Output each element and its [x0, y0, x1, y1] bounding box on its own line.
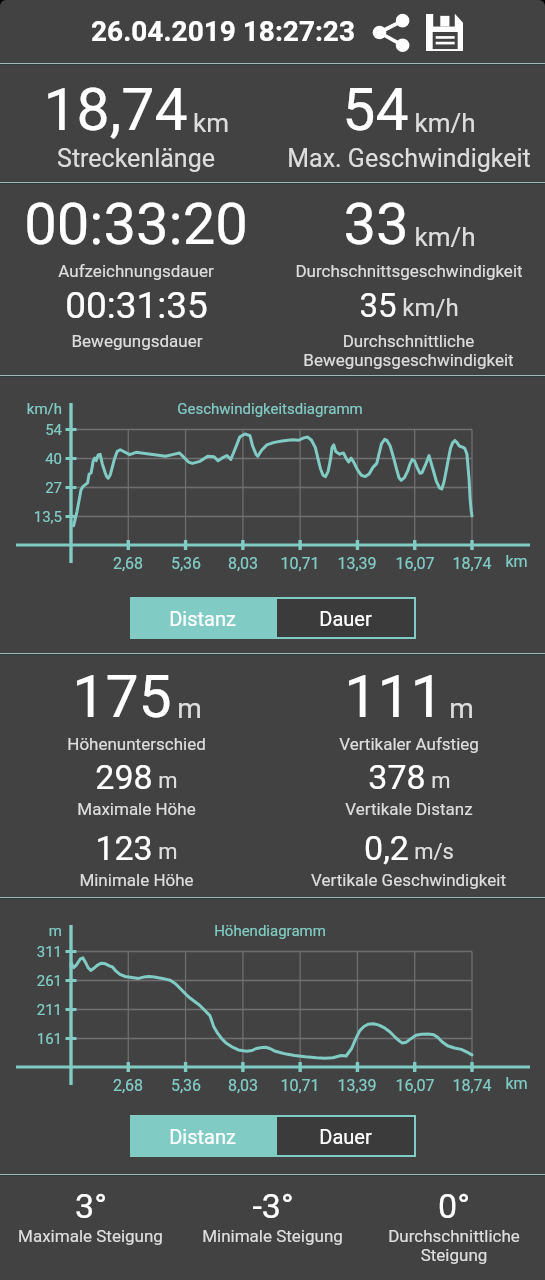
staticText: 5,36	[156, 554, 216, 573]
staticText: 8,03	[213, 554, 273, 573]
staticText: Vertikale Geschwindigkeit	[311, 870, 506, 890]
staticText: 261	[0, 972, 62, 990]
staticText: Distanz	[169, 1125, 236, 1148]
staticText: 13,5	[0, 508, 62, 526]
staticText: km	[193, 108, 229, 138]
button[interactable]: Distanz	[130, 1115, 275, 1157]
staticText: 123	[95, 828, 153, 868]
staticText: m	[158, 839, 178, 865]
staticText: m/s	[414, 839, 454, 865]
staticText: Minimale Steigung	[202, 1226, 343, 1246]
button[interactable]: Dauer	[275, 597, 416, 639]
staticText: 18,74	[442, 1076, 502, 1095]
staticText: Maximale Höhe	[77, 799, 196, 819]
staticText: m	[0, 922, 62, 940]
staticText: 211	[0, 1001, 62, 1019]
staticText: km	[505, 552, 528, 571]
staticText: Höhenunterschied	[67, 734, 206, 754]
staticText: Dauer	[319, 1125, 372, 1148]
staticText: 111	[344, 662, 444, 731]
button[interactable]: Distanz	[130, 597, 275, 639]
staticText: 10,71	[270, 554, 330, 573]
staticText: Höhendiagramm	[170, 922, 370, 940]
staticText: 13,39	[327, 554, 387, 573]
staticText: km/h	[402, 294, 459, 322]
staticText: Distanz	[169, 607, 236, 630]
button[interactable]: Save	[422, 10, 466, 54]
staticText: 54	[342, 75, 409, 144]
staticText: 00:31:35	[65, 284, 208, 327]
staticText: 378	[368, 757, 426, 797]
staticText: 18,74	[43, 75, 188, 144]
staticText: 161	[0, 1030, 62, 1048]
staticText: m	[431, 768, 451, 794]
staticText: 10,71	[270, 1076, 330, 1095]
staticText: 3°	[75, 1186, 107, 1226]
staticText: Maximale Steigung	[18, 1226, 163, 1246]
staticText: Streckenlänge	[57, 144, 215, 173]
staticText: 35	[359, 286, 397, 325]
staticText: Geschwindigkeitsdiagramm	[170, 400, 370, 418]
button[interactable]: Dauer	[275, 1115, 416, 1157]
staticText: 27	[0, 479, 62, 497]
staticText: 298	[95, 757, 153, 797]
staticText: -3°	[252, 1186, 294, 1226]
staticText: Max. Geschwindigkeit	[287, 144, 531, 173]
staticText: 0°	[438, 1186, 470, 1226]
staticText: m	[158, 768, 178, 794]
staticText: 40	[0, 450, 62, 468]
button[interactable]: Share	[369, 10, 413, 54]
staticText: 16,07	[385, 554, 445, 573]
staticText: 13,39	[327, 1076, 387, 1095]
staticText: km/h	[414, 222, 476, 252]
staticText: Vertikale Distanz	[345, 799, 473, 819]
staticText: Aufzeichnungsdauer	[58, 261, 214, 281]
staticText: Durchschnittliche Bewegungsgeschwindigke…	[303, 331, 514, 370]
staticText: 175	[72, 662, 172, 731]
staticText: 00:33:20	[24, 190, 248, 258]
staticText: 2,68	[98, 554, 158, 573]
staticText: 311	[0, 943, 62, 961]
staticText: 54	[0, 421, 62, 439]
staticText: 33	[343, 190, 409, 258]
staticText: km	[505, 1074, 528, 1093]
staticText: Durchschnittliche Steigung	[388, 1226, 520, 1265]
staticText: 0,2	[364, 828, 409, 868]
staticText: 5,36	[156, 1076, 216, 1095]
staticText: 18,74	[442, 554, 502, 573]
staticText: 26.04.2019 18:27:23	[91, 15, 355, 48]
staticText: Bewegungsdauer	[71, 331, 203, 351]
staticText: km/h	[0, 400, 62, 418]
staticText: Durchschnittsgeschwindigkeit	[295, 261, 523, 281]
staticText: km/h	[414, 108, 476, 138]
staticText: m	[177, 692, 202, 725]
staticText: Vertikaler Aufstieg	[339, 734, 479, 754]
staticText: 8,03	[213, 1076, 273, 1095]
staticText: 2,68	[98, 1076, 158, 1095]
staticText: Minimale Höhe	[79, 870, 194, 890]
staticText: m	[449, 692, 474, 725]
staticText: Dauer	[319, 607, 372, 630]
staticText: 16,07	[385, 1076, 445, 1095]
